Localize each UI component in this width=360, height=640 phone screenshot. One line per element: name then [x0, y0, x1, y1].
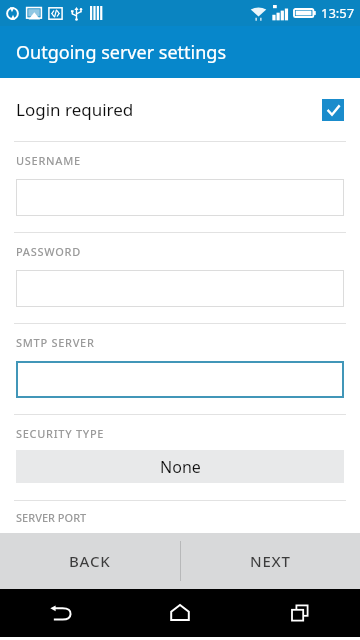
button[interactable]: Home: [120, 589, 240, 637]
staticText: BACK: [69, 551, 111, 571]
staticText: NEXT: [250, 551, 291, 571]
button[interactable]: SMTP SERVER: [0, 324, 360, 414]
staticText: SECURITY TYPE: [16, 426, 105, 441]
staticText: PASSWORD: [16, 244, 81, 259]
staticText: USERNAME: [16, 153, 81, 168]
button[interactable]: BACK: [0, 533, 180, 589]
button[interactable]: SECURITY TYPE: [0, 415, 360, 500]
other: Login required checkbox: [322, 99, 344, 121]
staticText: SMTP SERVER: [16, 335, 95, 350]
button[interactable]: PASSWORD: [0, 233, 360, 323]
staticText: 13:57: [321, 4, 355, 22]
button[interactable]: Back: [0, 589, 120, 637]
button[interactable]: USERNAME: [0, 142, 360, 232]
button[interactable]: Login required: [0, 78, 360, 141]
staticText: Login required: [16, 98, 322, 121]
staticText: None: [160, 456, 201, 478]
button[interactable]: Recent apps: [240, 589, 360, 637]
staticText: SERVER PORT: [16, 510, 87, 525]
staticText: Outgoing server settings: [16, 40, 227, 65]
button[interactable]: NEXT: [180, 533, 360, 589]
